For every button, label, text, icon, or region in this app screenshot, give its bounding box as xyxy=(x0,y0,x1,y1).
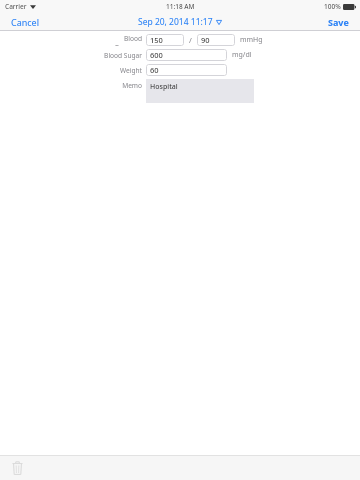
button[interactable]: Save xyxy=(317,12,360,31)
button[interactable]: Cancel xyxy=(0,12,51,31)
staticText: Sep 20, 2014 11:17 xyxy=(138,16,213,28)
staticText: mg/dl xyxy=(232,50,252,60)
staticText: 90 xyxy=(201,35,210,45)
staticText: Hospital xyxy=(150,82,178,92)
staticText: 11:18 AM xyxy=(166,2,195,11)
staticText: Carrier xyxy=(5,2,27,11)
button[interactable]: Hospital xyxy=(146,79,254,103)
staticText: mmHg xyxy=(240,35,263,45)
staticText: / xyxy=(189,35,192,45)
button[interactable]: 150 xyxy=(146,34,184,46)
button[interactable]: Sep 20, 2014 11:17 xyxy=(132,13,228,31)
staticText: 600 xyxy=(150,50,163,60)
staticText: 150 xyxy=(150,35,163,45)
button[interactable]: 60 xyxy=(146,64,227,76)
staticText: Cancel xyxy=(11,16,40,27)
staticText: Memo xyxy=(122,81,142,90)
staticText: Blood Sugar xyxy=(104,51,142,60)
button[interactable]: 90 xyxy=(197,34,235,46)
staticText: Blood Pressure xyxy=(96,34,142,46)
button[interactable]: Delete xyxy=(6,457,28,479)
staticText: Save xyxy=(328,16,349,27)
button[interactable]: 600 xyxy=(146,49,227,61)
staticText: Weight xyxy=(120,66,142,75)
staticText: 100% xyxy=(324,2,341,11)
staticText: 60 xyxy=(150,65,159,75)
